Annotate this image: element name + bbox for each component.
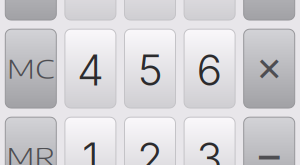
staticText: MR bbox=[10, 141, 52, 165]
staticText: 1 bbox=[82, 132, 99, 165]
button[interactable]: 7 bbox=[65, 0, 116, 20]
button[interactable]: 5 bbox=[124, 29, 175, 108]
button[interactable]: 8 bbox=[124, 0, 175, 20]
staticText: MC bbox=[10, 53, 51, 84]
button[interactable]: 3 bbox=[184, 117, 235, 165]
staticText: 4 bbox=[77, 44, 104, 96]
button[interactable]: MR bbox=[5, 117, 56, 165]
staticText: 5 bbox=[137, 44, 162, 96]
button[interactable]: MC bbox=[5, 29, 56, 108]
button[interactable]: × bbox=[244, 29, 295, 108]
staticText: 2 bbox=[137, 132, 163, 165]
button[interactable]: 1 bbox=[65, 117, 116, 165]
button[interactable]: 6 bbox=[184, 29, 235, 108]
staticText: × bbox=[256, 41, 282, 91]
button[interactable]: 4 bbox=[65, 29, 116, 108]
staticText: 6 bbox=[197, 44, 223, 96]
button[interactable]: − bbox=[244, 117, 295, 165]
staticText: − bbox=[254, 127, 284, 165]
button[interactable]: 2 bbox=[124, 117, 175, 165]
staticText: 3 bbox=[197, 132, 223, 165]
button[interactable]: ÷ bbox=[244, 0, 295, 20]
button[interactable]: M+ bbox=[5, 0, 56, 20]
button[interactable]: 9 bbox=[184, 0, 235, 20]
